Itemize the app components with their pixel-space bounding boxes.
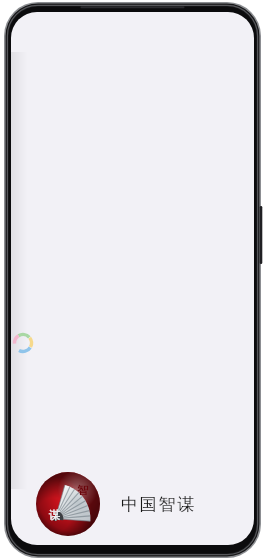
button[interactable]: 中国智谋 logo: [36, 472, 100, 536]
button[interactable]: 中国智谋: [121, 491, 219, 517]
other: Loading: [12, 332, 34, 354]
staticText: 智: [77, 483, 88, 497]
staticText: 谋: [49, 508, 60, 522]
staticText: 中国智谋: [121, 494, 197, 515]
